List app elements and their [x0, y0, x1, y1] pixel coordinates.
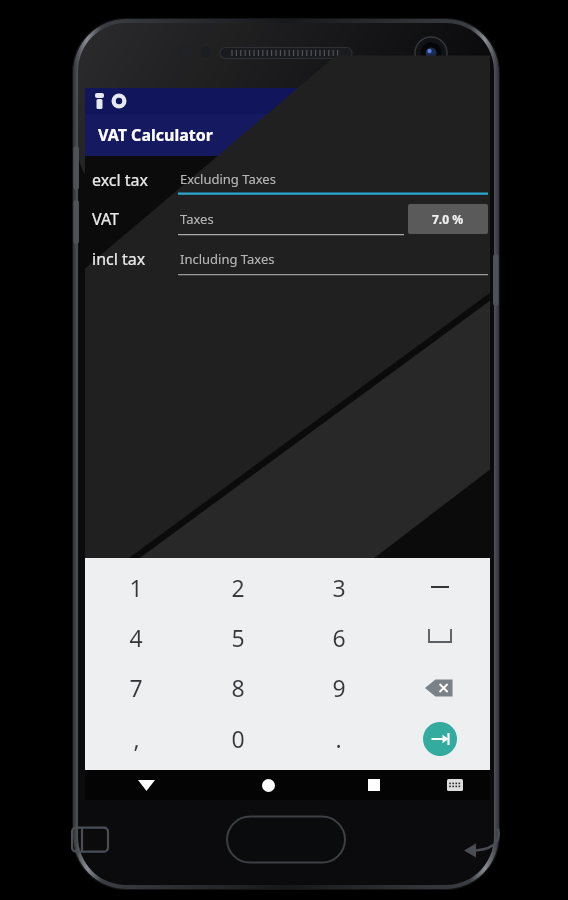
staticText: Taxes — [180, 210, 214, 228]
staticText: Including Taxes — [180, 250, 275, 268]
button[interactable]: Space — [389, 612, 490, 662]
staticText: 4 — [129, 622, 143, 653]
staticText: VAT Calculator — [98, 124, 213, 146]
button[interactable]: 6 — [288, 612, 389, 662]
staticText: VAT — [92, 208, 178, 230]
staticText: . — [335, 723, 342, 754]
button[interactable]: Backspace — [389, 662, 490, 713]
staticText: , — [133, 723, 140, 754]
staticText: 9 — [332, 672, 346, 703]
button[interactable]: 7.0 % — [408, 204, 488, 234]
staticText: 3 — [332, 572, 346, 603]
button[interactable]: Including Taxes — [178, 242, 488, 276]
staticText: excl tax — [92, 169, 178, 191]
button[interactable]: 5 — [187, 612, 288, 662]
button[interactable]: 0 — [187, 713, 288, 764]
button[interactable]: Taxes — [178, 202, 404, 236]
staticText: 6 — [332, 622, 346, 653]
button[interactable]: Home — [207, 770, 329, 800]
staticText: 0 — [231, 723, 245, 754]
button[interactable]: Enter — [389, 713, 490, 764]
button[interactable]: . — [288, 713, 389, 764]
button[interactable]: 9 — [288, 662, 389, 713]
button[interactable]: Change keyboard — [419, 770, 490, 800]
staticText: 2 — [231, 572, 245, 603]
button[interactable]: 3 — [288, 562, 389, 612]
button[interactable]: Recents — [329, 770, 419, 800]
staticText: 7 — [129, 672, 143, 703]
button[interactable]: 7 — [85, 662, 187, 713]
button[interactable]: 1 — [85, 562, 187, 612]
button[interactable]: , — [85, 713, 187, 764]
button[interactable]: Excluding Taxes — [178, 164, 488, 196]
button[interactable]: 8 — [187, 662, 288, 713]
button[interactable]: 4 — [85, 612, 187, 662]
button[interactable]: 2 — [187, 562, 288, 612]
staticText: 5 — [231, 622, 245, 653]
button[interactable]: Minus — [389, 562, 490, 612]
staticText: Excluding Taxes — [180, 170, 276, 188]
staticText: 1 — [129, 572, 143, 603]
staticText: incl tax — [92, 248, 178, 270]
button[interactable]: Hide keyboard — [85, 770, 207, 800]
staticText: 8 — [231, 672, 245, 703]
staticText: 7.0 % — [432, 211, 464, 227]
